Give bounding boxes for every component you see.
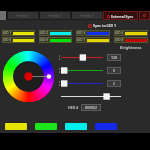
staticText: 2 (113, 81, 116, 86)
button[interactable]: Color wheel (3, 51, 54, 102)
button[interactable]: LED 2 (39, 30, 72, 36)
staticText: 800002 (85, 105, 98, 110)
button[interactable]: 0 (107, 67, 121, 74)
button[interactable]: LED 6 (39, 37, 72, 43)
button[interactable]: 2 (107, 80, 121, 87)
button[interactable]: Color preset (5, 123, 27, 130)
staticText: Profile 1 (16, 13, 30, 18)
staticText: HEX # (68, 105, 79, 110)
button[interactable]: Sync (139, 11, 150, 20)
button[interactable]: Color preset (65, 123, 87, 130)
staticText: LED 3 (77, 31, 86, 35)
staticText: Sync to LED 1 (93, 23, 116, 28)
button[interactable]: LED 5 (2, 37, 35, 43)
button[interactable]: 128 (107, 54, 121, 61)
button[interactable]: LED 7 (76, 37, 110, 43)
button[interactable]: Sync to LED 1 (88, 23, 116, 28)
button[interactable]: Color preset (35, 123, 57, 130)
staticText: Brightness (120, 45, 142, 50)
staticText: LED 2 (40, 31, 49, 35)
staticText: External Sync (111, 14, 134, 18)
staticText: LED 1 (3, 31, 12, 35)
button[interactable]: Profile 3 (71, 11, 103, 20)
button[interactable]: Channel slider (61, 80, 103, 87)
button[interactable]: Profile 2 (39, 11, 71, 20)
staticText: 128 (111, 55, 118, 60)
staticText: 0 (113, 68, 116, 73)
button[interactable]: Channel slider (61, 54, 103, 61)
button[interactable]: 800002 (81, 104, 101, 111)
button[interactable]: Brightness slider (61, 93, 121, 100)
button[interactable]: Channel slider (61, 67, 103, 74)
button[interactable]: Profile 1 (7, 11, 39, 20)
button[interactable]: External Sync (103, 11, 138, 20)
staticText: LED 6 (40, 38, 49, 42)
button[interactable]: LED 1 (2, 30, 35, 36)
button[interactable]: LED 3 (76, 30, 110, 36)
staticText: LED 5 (3, 38, 12, 42)
staticText: Profile 3 (80, 13, 94, 18)
button[interactable]: LED 4 (114, 30, 148, 36)
staticText: LED 7 (77, 38, 86, 42)
staticText: LED 4 (115, 31, 124, 35)
button[interactable]: LED 8 (114, 37, 148, 43)
staticText: Profile 2 (48, 13, 62, 18)
staticText: LED 8 (115, 38, 124, 42)
button[interactable]: Color preset (95, 123, 117, 130)
